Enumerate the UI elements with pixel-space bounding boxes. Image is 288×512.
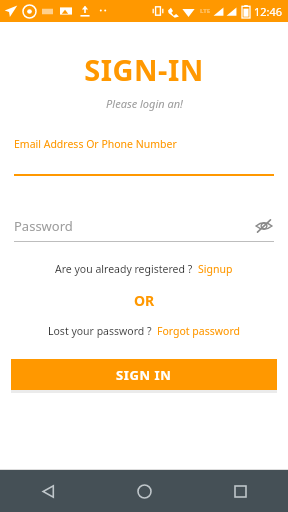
staticText: SIGN IN bbox=[116, 366, 172, 384]
button[interactable]: SIGN IN bbox=[11, 359, 277, 390]
button[interactable]: Recent apps bbox=[192, 470, 288, 512]
button[interactable]: Password bbox=[14, 216, 274, 236]
button[interactable]: Back bbox=[0, 470, 96, 512]
button[interactable]: Home bbox=[96, 470, 192, 512]
staticText: Forgot password bbox=[157, 324, 240, 338]
staticText: LTE bbox=[200, 7, 211, 15]
staticText: SIGN-IN bbox=[84, 50, 204, 89]
staticText: Password bbox=[14, 217, 73, 235]
button[interactable]: Show password bbox=[254, 216, 274, 236]
staticText: Are you already registered ? bbox=[55, 262, 193, 276]
staticText: Signup bbox=[198, 262, 233, 276]
staticText: 12:46 bbox=[254, 4, 283, 19]
button[interactable]: Email Address Or Phone Number bbox=[14, 137, 274, 176]
staticText: Lost your password ? bbox=[48, 324, 152, 338]
button[interactable]: Forgot password bbox=[157, 324, 240, 338]
staticText: OR bbox=[134, 291, 155, 310]
staticText: Email Address Or Phone Number bbox=[14, 137, 177, 151]
staticText: Please login an! bbox=[106, 96, 183, 111]
button[interactable]: Signup bbox=[198, 262, 233, 276]
